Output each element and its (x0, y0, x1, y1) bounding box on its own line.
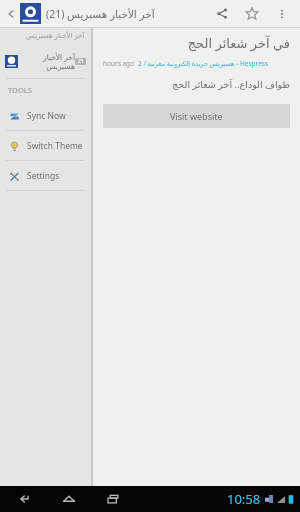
button[interactable]: Switch Theme (0, 131, 91, 160)
button[interactable]: Up (3, 6, 19, 22)
button[interactable]: More options (270, 2, 294, 26)
staticText: Sync Now (27, 110, 66, 122)
button[interactable]: Back (14, 488, 36, 510)
button[interactable]: Recent apps (102, 488, 124, 510)
staticText: hours ago (103, 59, 135, 68)
staticText: هسبريس جريدة إلكترونية مغربية / 2 - (138, 59, 240, 68)
staticText: 10:58 (227, 490, 261, 508)
staticText: آخر الأخبار هسبريس (26, 31, 85, 41)
button[interactable]: Visit website (103, 104, 290, 128)
staticText: 21 (78, 58, 84, 65)
staticText: Settings (27, 170, 60, 182)
button[interactable]: آخر الأخبار هسبريس (0, 44, 91, 78)
staticText: في آخر شعائر الحج (103, 34, 290, 52)
button[interactable]: Sync Now (0, 101, 91, 130)
button[interactable]: Settings (0, 161, 91, 190)
staticText: Switch Theme (27, 140, 83, 152)
staticText: TOOLS (8, 85, 32, 95)
staticText: آخر الأخبار هسبريس (22, 52, 75, 71)
staticText: آخر الأخبار هسبريس (21) (46, 7, 155, 21)
staticText: Hespress (240, 59, 269, 68)
button[interactable]: Share (210, 2, 234, 26)
button[interactable]: Home (58, 488, 80, 510)
button[interactable]: Favorite (240, 2, 264, 26)
staticText: Visit website (170, 110, 223, 122)
staticText: طواف الوداع.. آخر شعائر الحج (103, 78, 290, 91)
